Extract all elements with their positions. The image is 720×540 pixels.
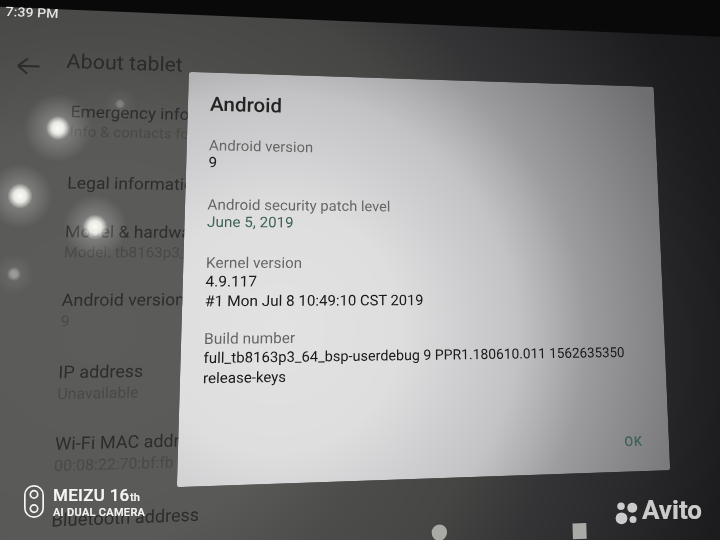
staticText: #1 Mon Jul 8 10:49:10 CST 2019: [205, 292, 424, 310]
staticText: Bluetooth address: [51, 504, 200, 531]
staticText: Legal information: [67, 173, 204, 194]
button[interactable]: Wi-Fi MAC address: [38, 412, 432, 491]
staticText: release-keys: [203, 368, 287, 387]
staticText: 7:39 PM: [5, 4, 59, 21]
button[interactable]: Legal information: [51, 161, 429, 213]
button[interactable]: Bluetooth address: [35, 484, 432, 540]
staticText: About tablet: [66, 49, 183, 75]
button[interactable]: IP address: [41, 345, 431, 418]
staticText: Emergency information: [70, 102, 247, 125]
staticText: full_tb8163p3_64_bsp-userdebug 9 PPR1.18…: [203, 344, 625, 366]
button[interactable]: Emergency information: [54, 90, 429, 160]
staticText: Android security patch level: [207, 196, 391, 215]
button[interactable]: Back: [0, 41, 55, 90]
staticText: Model & hardware: [64, 222, 206, 242]
staticText: th: [130, 491, 140, 504]
staticText: Model: tb8163p3_64: [64, 243, 204, 261]
staticText: 9: [208, 154, 218, 171]
staticText: Android version: [61, 290, 186, 310]
staticText: Android: [210, 92, 282, 116]
button[interactable]: Android version: [45, 278, 431, 345]
staticText: Avito: [642, 495, 703, 525]
staticText: OK: [624, 432, 644, 449]
staticText: 9: [60, 312, 70, 329]
staticText: Build number: [204, 329, 296, 348]
staticText: June 5, 2019: [207, 214, 294, 231]
staticText: 4.9.117: [205, 273, 258, 291]
staticText: MEIZU 16: [53, 485, 130, 505]
staticText: 00:08:22:70:bf:fb: [53, 453, 174, 475]
staticText: Wi-Fi MAC address: [54, 429, 208, 454]
staticText: Android version: [209, 137, 313, 156]
staticText: AI DUAL CAMERA: [53, 506, 146, 519]
staticText: IP address: [58, 361, 144, 383]
staticText: Unavailable: [57, 383, 139, 402]
button[interactable]: OK: [611, 425, 656, 457]
staticText: Kernel version: [206, 254, 303, 272]
button[interactable]: Model & hardware: [48, 210, 430, 275]
staticText: Info & contacts for emergencies: [69, 123, 282, 144]
